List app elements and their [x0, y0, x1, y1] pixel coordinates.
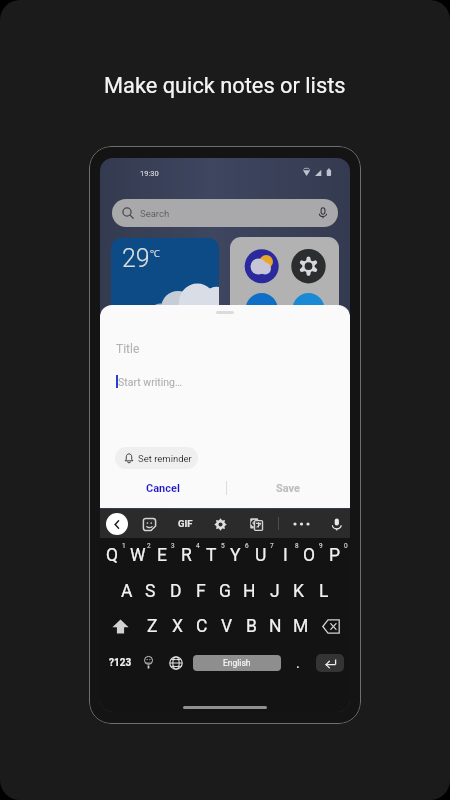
button[interactable]: U: [251, 542, 276, 569]
button[interactable]: N: [263, 612, 288, 640]
staticText: L: [319, 581, 329, 602]
button[interactable]: Set reminder: [115, 447, 198, 469]
button[interactable]: B: [239, 612, 264, 640]
button[interactable]: Weather widget: [111, 238, 219, 320]
staticText: K: [293, 581, 304, 602]
staticText: Z: [147, 616, 158, 637]
button[interactable]: X: [165, 612, 190, 640]
staticText: Search: [140, 208, 170, 219]
button[interactable]: Cancel: [119, 475, 207, 501]
staticText: Cancel: [146, 482, 180, 495]
staticText: 1: [122, 542, 126, 550]
button[interactable]: G: [212, 578, 237, 605]
button[interactable]: P: [325, 542, 350, 569]
staticText: 29: [122, 244, 150, 273]
staticText: Make quick notes or lists: [104, 73, 346, 99]
staticText: H: [243, 581, 256, 602]
button[interactable]: Voice input: [326, 514, 346, 534]
button[interactable]: Translate: [246, 514, 266, 534]
button[interactable]: I: [276, 542, 301, 569]
button[interactable]: H: [237, 578, 262, 605]
staticText: A: [121, 581, 133, 602]
staticText: N: [269, 616, 282, 637]
staticText: 8: [295, 542, 299, 550]
staticText: Title: [116, 342, 140, 356]
button[interactable]: Save: [244, 475, 332, 501]
staticText: U: [255, 545, 267, 566]
staticText: GIF: [178, 518, 193, 529]
button[interactable]: D: [163, 578, 188, 605]
button[interactable]: E: [152, 542, 177, 569]
staticText: Y: [230, 545, 241, 566]
staticText: 9: [319, 542, 323, 550]
button[interactable]: Shift: [102, 612, 139, 640]
button[interactable]: T: [202, 542, 227, 569]
staticText: G: [219, 581, 231, 602]
button[interactable]: R: [177, 542, 202, 569]
staticText: Save: [276, 482, 301, 495]
button[interactable]: O: [300, 542, 325, 569]
staticText: ℃: [150, 246, 160, 260]
button[interactable]: ?123: [104, 649, 137, 677]
staticText: English: [223, 658, 251, 668]
button[interactable]: K: [286, 578, 311, 605]
staticText: 5: [221, 542, 225, 550]
button[interactable]: Change language: [165, 649, 187, 677]
button[interactable]: L: [311, 578, 336, 605]
staticText: J: [270, 581, 280, 602]
staticText: F: [196, 581, 206, 602]
staticText: C: [196, 616, 208, 637]
button[interactable]: Emoji: [138, 649, 158, 677]
staticText: Set reminder: [138, 453, 192, 464]
staticText: D: [170, 581, 182, 602]
staticText: 4: [196, 542, 200, 550]
staticText: S: [145, 581, 156, 602]
staticText: 19:30: [140, 169, 159, 178]
staticText: P: [329, 545, 341, 566]
button[interactable]: More options: [291, 514, 311, 534]
staticText: O: [303, 545, 316, 566]
button[interactable]: Enter: [316, 654, 344, 672]
staticText: B: [246, 616, 257, 637]
button[interactable]: Apps widget: [230, 237, 339, 319]
staticText: 6: [245, 542, 249, 550]
button[interactable]: Z: [140, 612, 165, 640]
button[interactable]: Back: [106, 513, 128, 535]
button[interactable]: W: [128, 542, 153, 569]
staticText: 7: [270, 542, 274, 550]
button[interactable]: Y: [226, 542, 251, 569]
button[interactable]: English: [193, 655, 281, 671]
staticText: I: [283, 545, 288, 566]
staticText: 3: [171, 542, 175, 550]
button[interactable]: Backspace: [312, 612, 349, 640]
staticText: 2: [147, 542, 151, 550]
button[interactable]: Search: [112, 199, 338, 227]
staticText: Q: [106, 545, 119, 566]
button[interactable]: J: [262, 578, 287, 605]
button[interactable]: .: [288, 649, 308, 677]
button[interactable]: C: [189, 612, 214, 640]
staticText: R: [181, 545, 192, 566]
button[interactable]: V: [214, 612, 239, 640]
button[interactable]: Keyboard settings: [210, 514, 230, 534]
button[interactable]: S: [138, 578, 163, 605]
staticText: Start writing…: [118, 376, 182, 388]
button[interactable]: A: [114, 578, 139, 605]
staticText: ?123: [109, 657, 132, 669]
staticText: V: [221, 616, 233, 637]
staticText: E: [157, 545, 167, 566]
staticText: 0: [344, 542, 348, 550]
button[interactable]: GIF: [173, 511, 197, 536]
staticText: X: [172, 616, 183, 637]
button[interactable]: M: [288, 612, 313, 640]
staticText: W: [130, 545, 146, 566]
staticText: T: [206, 545, 217, 566]
staticText: .: [296, 655, 300, 671]
button[interactable]: F: [188, 578, 213, 605]
button[interactable]: Q: [103, 542, 128, 569]
button[interactable]: Stickers: [139, 514, 159, 534]
staticText: M: [293, 616, 309, 637]
